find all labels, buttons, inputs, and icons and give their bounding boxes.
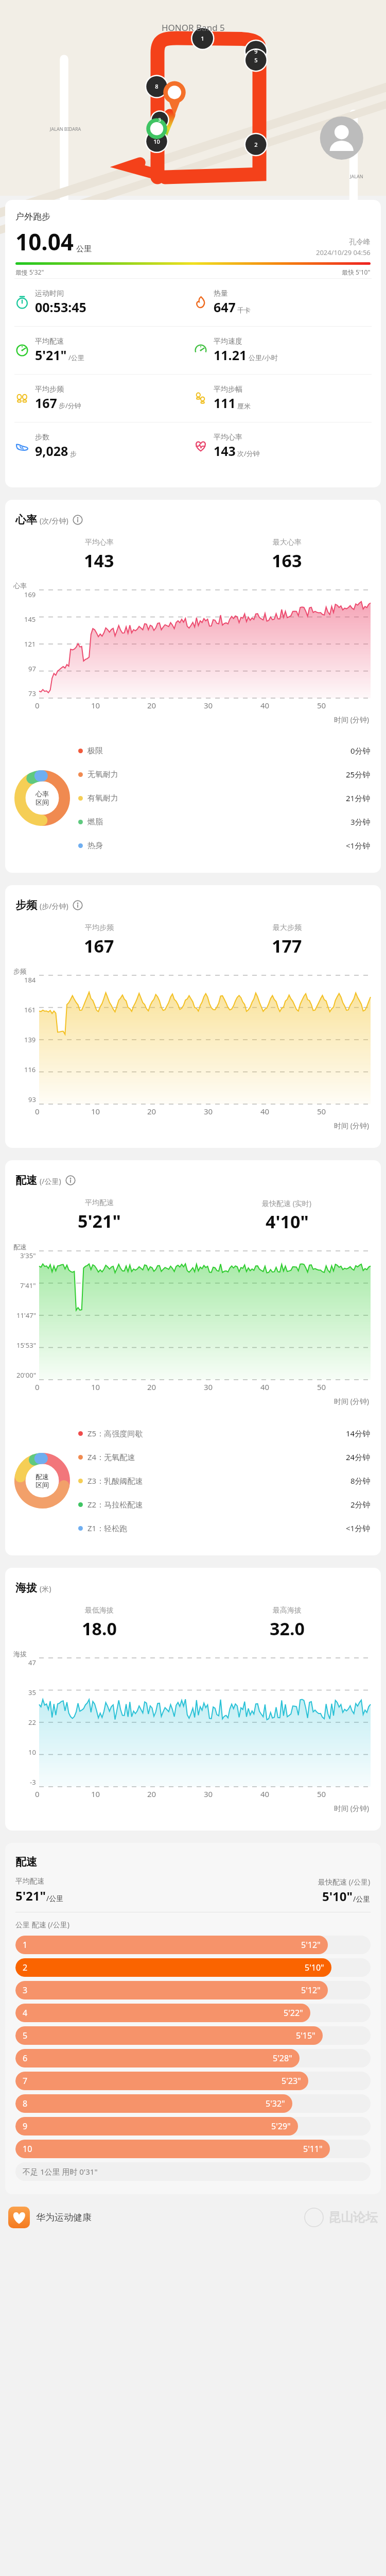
button[interactable]: 说明 [72, 514, 83, 526]
staticText: 千卡 [237, 306, 251, 314]
staticText: /公里 [46, 1893, 64, 1903]
button[interactable]: 3 [15, 1981, 371, 1999]
button[interactable]: 4 [15, 2004, 371, 2022]
staticText: 40 [260, 1789, 270, 1799]
staticText: 50 [317, 1106, 326, 1116]
staticText: 2 [254, 141, 258, 148]
staticText: 2 [23, 1962, 28, 1973]
staticText: 5'11" [303, 2143, 323, 2155]
staticText: 配速 [15, 1174, 37, 1187]
staticText: 10 [91, 1382, 100, 1392]
staticText: 厘米 [237, 402, 251, 410]
staticText: 32.0 [270, 1617, 305, 1640]
staticText: 配速 [13, 1243, 27, 1251]
staticText: 3分钟 [350, 817, 371, 827]
staticText: 169 [24, 590, 36, 599]
staticText: 配速 [15, 1855, 37, 1869]
button[interactable]: 说明 [72, 900, 83, 911]
button[interactable]: 7 [15, 2072, 371, 2090]
staticText: 最快配速 (/公里) [318, 1877, 371, 1887]
staticText: 不足 1公里 用时 0'31" [23, 2166, 98, 2177]
staticText: 步频 [13, 967, 27, 975]
staticText: 0 [35, 1106, 40, 1116]
staticText: 5'21" [35, 346, 67, 364]
staticText: 163 [272, 549, 302, 572]
button[interactable]: 平均速度 [193, 337, 372, 364]
staticText: 区间 [36, 798, 49, 806]
button[interactable]: 平均心率 [193, 433, 372, 460]
staticText: (/公里) [40, 1176, 61, 1186]
staticText: 0 [35, 1789, 40, 1799]
staticText: 9,028 [35, 442, 68, 460]
staticText: 孔令峰 [349, 238, 371, 247]
staticText: 21分钟 [346, 793, 371, 803]
staticText: Z4：无氧配速 [87, 1452, 135, 1462]
staticText: 10 [91, 1106, 100, 1116]
staticText: 海拔 [15, 1581, 37, 1595]
button[interactable]: 5 [15, 2026, 371, 2045]
button[interactable]: 热量 [193, 289, 372, 316]
staticText: (米) [40, 1584, 51, 1594]
button[interactable]: 6 [15, 2049, 371, 2067]
staticText: 5'12" [301, 1985, 321, 1996]
staticText: 24分钟 [346, 1452, 371, 1462]
staticText: 平均配速 [85, 1198, 114, 1208]
button[interactable]: 平均配速 [14, 337, 193, 364]
staticText: 167 [35, 394, 57, 412]
staticText: 30 [204, 1106, 213, 1116]
staticText: 平均步频 [35, 385, 64, 394]
staticText: 海拔 [13, 1650, 27, 1658]
button[interactable]: 平均步频 [14, 385, 193, 412]
staticText: 0分钟 [350, 745, 371, 756]
staticText: 2024/10/29 04:56 [316, 248, 371, 257]
staticText: 5'23" [282, 2075, 301, 2087]
button[interactable]: 运动时间 [14, 289, 193, 316]
staticText: 最低海拔 [85, 1606, 114, 1615]
staticText: 20 [147, 700, 156, 710]
staticText: 步频 [15, 899, 37, 912]
staticText: 平均心率 [214, 433, 242, 442]
staticText: 5'10" [305, 1962, 324, 1973]
staticText: 15'53" [16, 1341, 36, 1350]
staticText: /公里 [353, 1894, 371, 1904]
button[interactable]: 10 [15, 2140, 371, 2158]
staticText: 47 [28, 1658, 36, 1667]
button[interactable]: 步数 [14, 433, 193, 460]
staticText: 5'10" [322, 1888, 353, 1905]
staticText: 4'10" [266, 1210, 309, 1233]
staticText: 9 [23, 2121, 28, 2132]
button[interactable]: 2 [15, 1958, 371, 1977]
staticText: 647 [214, 298, 236, 316]
staticText: 2分钟 [350, 1499, 371, 1510]
staticText: 华为运动健康 [36, 2212, 92, 2224]
staticText: 25分钟 [346, 769, 371, 779]
staticText: 昆山论坛 [328, 2210, 378, 2225]
staticText: 最大心率 [273, 538, 302, 547]
staticText: 14分钟 [346, 1428, 371, 1438]
staticText: 40 [260, 700, 270, 710]
staticText: (步/分钟) [40, 901, 68, 911]
button[interactable]: 8 [15, 2094, 371, 2113]
staticText: 区间 [36, 1481, 49, 1489]
staticText: 心率 [36, 790, 49, 798]
staticText: 3'35" [20, 1251, 36, 1260]
staticText: 时间 (分钟) [334, 1121, 370, 1130]
staticText: Z1：轻松跑 [87, 1523, 128, 1533]
button[interactable]: 9 [15, 2117, 371, 2136]
staticText: 0 [35, 1382, 40, 1392]
staticText: 步 [70, 450, 77, 458]
staticText: /公里 [68, 353, 84, 362]
staticText: 极限 [87, 746, 103, 756]
staticText: 公里 [76, 244, 92, 254]
button[interactable]: 平均步幅 [193, 385, 372, 412]
button[interactable]: 说明 [65, 1175, 76, 1186]
staticText: 运动时间 [35, 289, 64, 298]
staticText: 145 [24, 615, 36, 624]
staticText: 8分钟 [350, 1476, 371, 1486]
button[interactable]: 1 [15, 1936, 371, 1954]
staticText: 户外跑步 [15, 211, 50, 222]
staticText: 22 [28, 1718, 36, 1727]
staticText: JALAN [350, 173, 363, 179]
staticText: 5'29" [271, 2121, 291, 2132]
staticText: 平均步频 [85, 923, 114, 933]
